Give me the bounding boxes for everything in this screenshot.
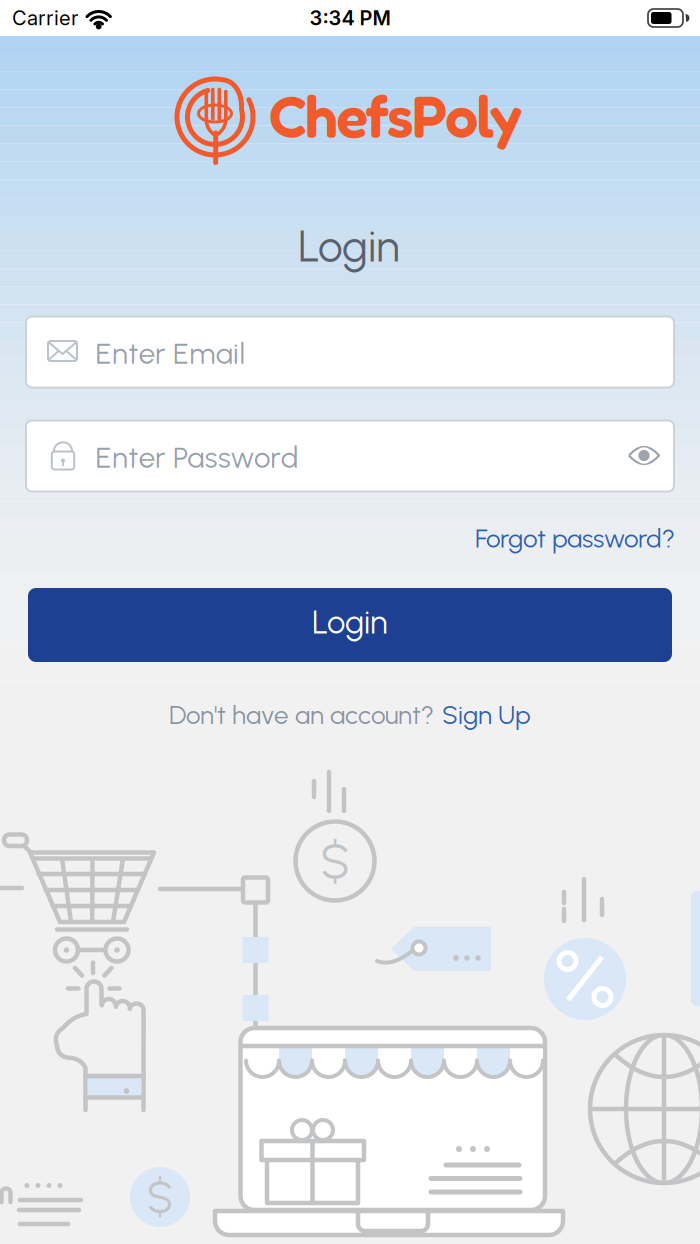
staticText: Carrier [12,6,78,30]
staticText: Enter Password [95,440,299,475]
staticText: Enter Email [95,336,245,371]
staticText: Sign Up [442,699,531,731]
staticText: Don't have an account? [169,699,434,731]
staticText: $ [147,1171,173,1223]
staticText: Login [312,602,388,642]
staticText: Login [298,220,400,272]
staticText: $ [320,831,349,891]
staticText: ChefsPoly [269,79,523,150]
staticText: 3:34 PM [309,6,390,30]
button[interactable]: Show password [622,433,666,477]
staticText: Forgot password? [475,523,675,554]
button[interactable]: Forgot password? [355,523,675,554]
button[interactable]: Enter Password [25,419,675,492]
button[interactable]: Sign Up [442,699,531,731]
button[interactable]: Enter Email [25,315,675,388]
button[interactable]: Login [28,588,672,662]
